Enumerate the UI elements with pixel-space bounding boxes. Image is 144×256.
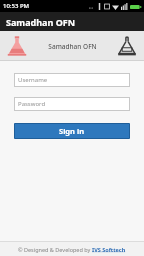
staticText: Password xyxy=(18,100,46,108)
staticText: Samadhan OFN xyxy=(6,16,76,28)
button[interactable]: Sign in xyxy=(14,123,130,139)
staticText: © Designed & Developed by xyxy=(18,246,92,253)
button[interactable]: Password xyxy=(14,97,130,111)
button[interactable]: Samadhan logo xyxy=(4,33,30,59)
button[interactable]: IVS Softtech xyxy=(92,246,126,253)
staticText: Username xyxy=(18,76,48,84)
staticText: Samadhan OFN xyxy=(48,42,97,51)
staticText: 10:53 PM xyxy=(3,2,30,10)
staticText: Sign in xyxy=(59,126,85,136)
button[interactable]: Username xyxy=(14,73,130,87)
button[interactable]: OFN logo xyxy=(114,33,140,59)
